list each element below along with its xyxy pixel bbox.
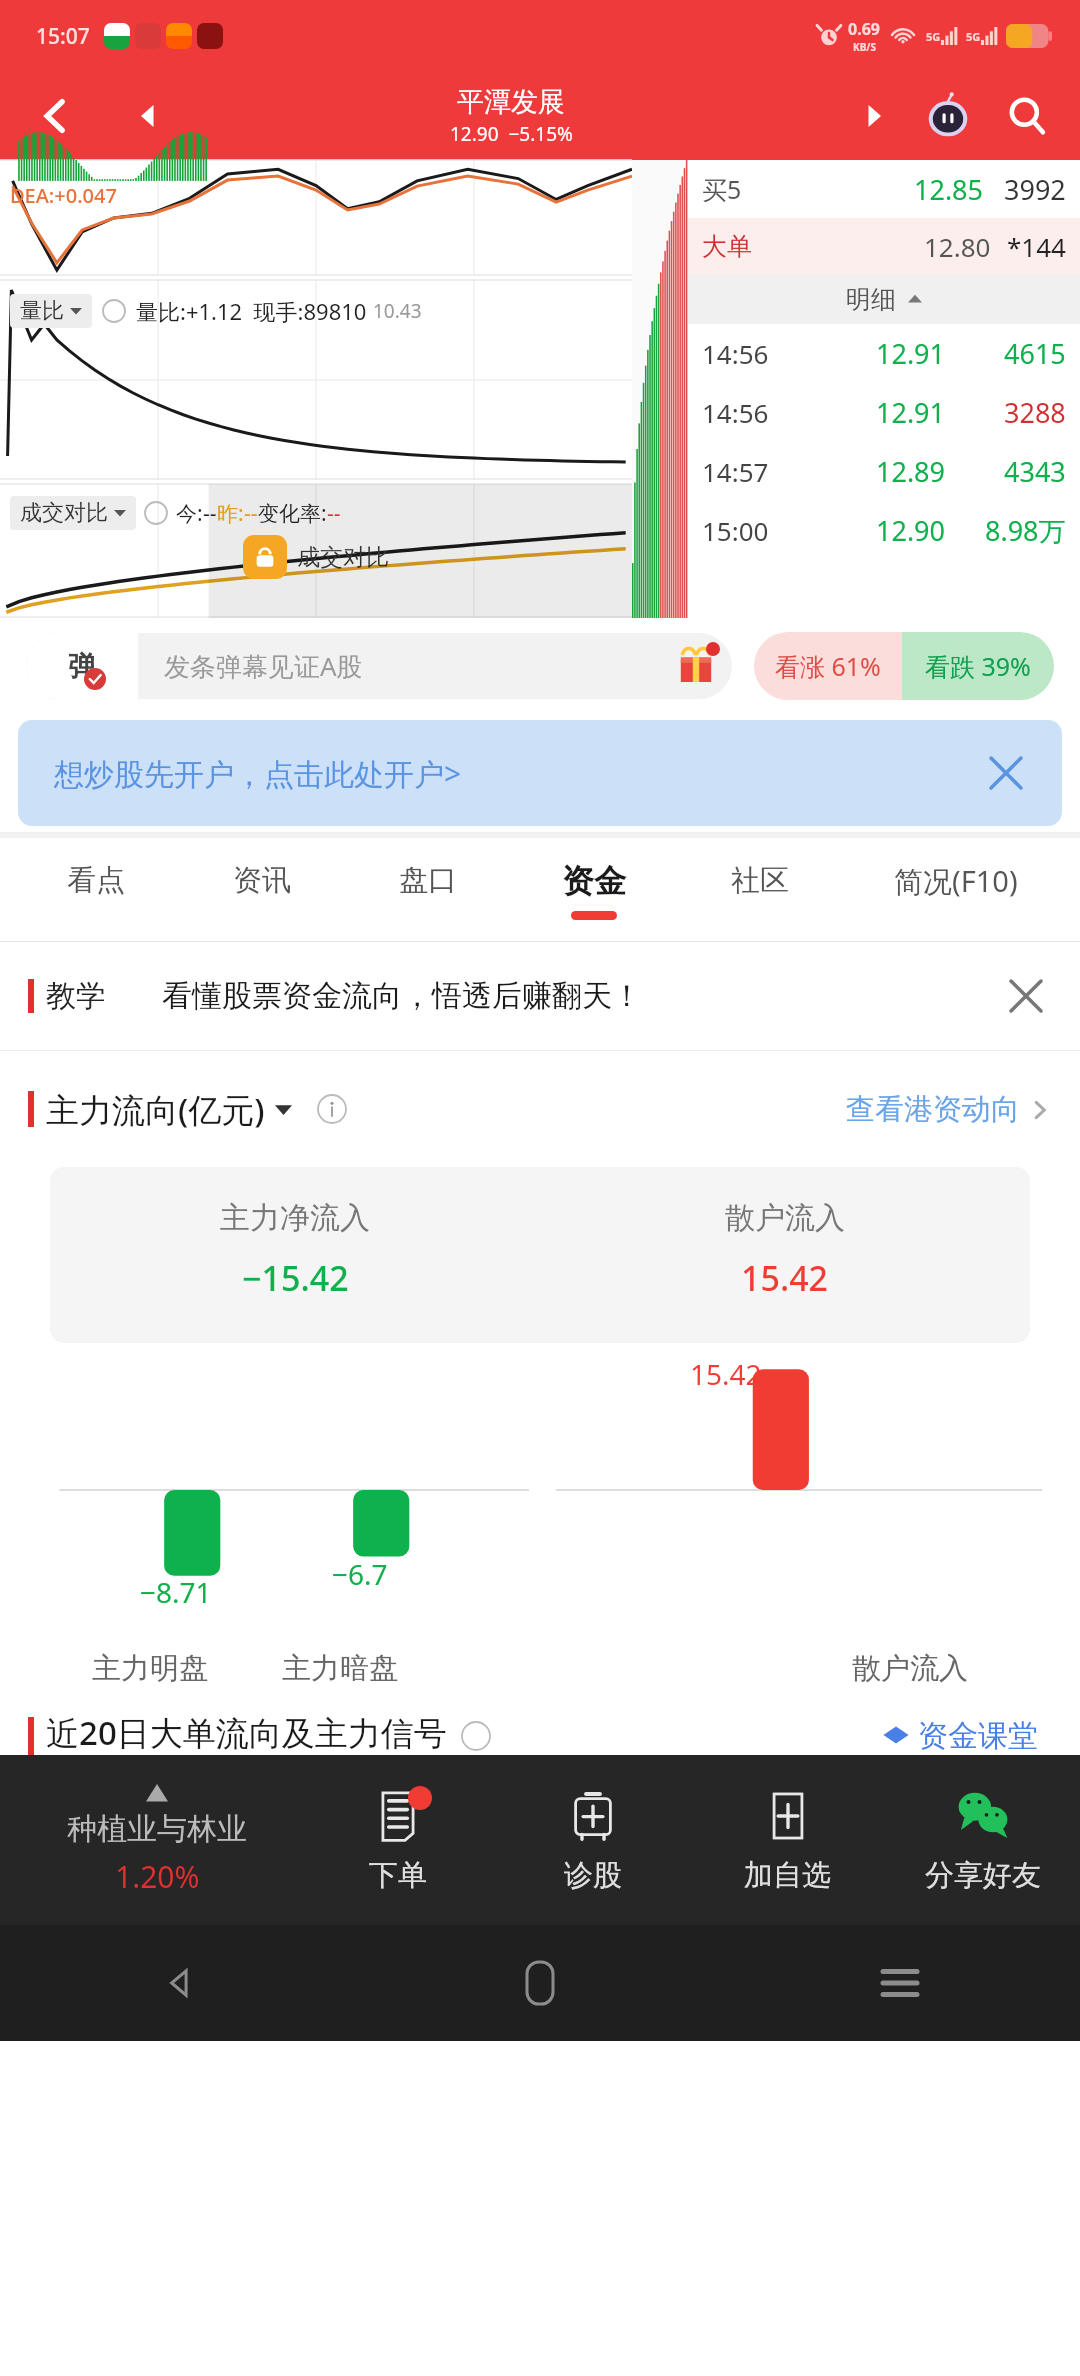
staticText: 弹 <box>68 649 96 684</box>
staticText: 想炒股先开户，点击此处开户> <box>54 753 462 794</box>
staticText: 量比 <box>20 297 64 325</box>
button[interactable]: 想炒股先开户，点击此处开户> <box>18 720 1062 826</box>
staticText: 15:00 <box>702 513 769 548</box>
button[interactable]: Previous stock <box>120 88 176 144</box>
button[interactable]: 主力流向(亿元) <box>46 1087 292 1132</box>
staticText: 12.85 <box>914 171 984 208</box>
button[interactable]: 诊股 <box>495 1755 690 1925</box>
staticText: 今: <box>176 499 203 528</box>
staticText: 明细 <box>846 284 896 315</box>
staticText: 近20日大单流向及主力信号 <box>46 1710 447 1755</box>
staticText: 5G <box>966 29 981 44</box>
staticText: 资讯 <box>233 862 291 899</box>
button[interactable]: 资金课堂 <box>868 1717 1052 1755</box>
staticText: 看懂股票资金流向，悟透后赚翻天！ <box>162 977 642 1015</box>
staticText: 散户流入 <box>725 1199 845 1237</box>
button[interactable]: Info <box>314 1091 350 1127</box>
staticText: 8.98万 <box>985 512 1066 549</box>
staticText: 资金课堂 <box>918 1717 1038 1755</box>
button[interactable]: Close banner <box>980 747 1032 799</box>
button[interactable]: 成交对比 <box>243 535 389 579</box>
staticText: DEA:+0.047 <box>10 182 117 209</box>
button[interactable]: 看涨 61% <box>754 632 902 700</box>
staticText: 昨: <box>217 499 244 528</box>
button[interactable]: 分享好友 <box>885 1755 1080 1925</box>
button[interactable]: 明细 <box>688 274 1080 324</box>
staticText: 大单 <box>702 231 752 262</box>
staticText: 散户流入 <box>852 1650 968 1687</box>
staticText: 查看港资动向 <box>846 1091 1020 1128</box>
staticText: 3288 <box>1004 394 1066 431</box>
staticText: 14:56 <box>702 336 769 371</box>
button[interactable]: 15:00 <box>688 501 1080 560</box>
button[interactable]: Back <box>0 1925 360 2041</box>
button[interactable]: 14:56 <box>688 324 1080 383</box>
staticText: 发条弹幕见证A股 <box>164 648 363 684</box>
button[interactable]: Close teaching banner <box>1000 970 1052 1022</box>
staticText: 15:07 <box>36 22 90 51</box>
button[interactable]: AI assistant <box>916 84 980 148</box>
staticText: 成交对比 <box>297 543 389 572</box>
staticText: 种植业与林业 <box>67 1810 247 1848</box>
staticText: 1.20% <box>115 1856 200 1897</box>
staticText: −6.7 <box>332 1555 388 1593</box>
button[interactable]: 下单 <box>300 1755 495 1925</box>
button[interactable]: 社区 <box>677 838 843 942</box>
button[interactable]: 买5 <box>688 160 1080 218</box>
staticText: 看跌 39% <box>925 649 1031 683</box>
button[interactable]: 量比 <box>10 294 92 328</box>
button[interactable]: Search <box>996 85 1058 147</box>
staticText: 4343 <box>1004 453 1066 490</box>
button[interactable]: 加自选 <box>690 1755 885 1925</box>
button[interactable]: 看点 <box>12 838 179 942</box>
staticText: 12.90 −5.15% <box>450 121 573 147</box>
button[interactable]: 查看港资动向 <box>846 1091 1052 1128</box>
staticText: 分享好友 <box>925 1857 1041 1894</box>
button[interactable]: 弹 <box>26 633 732 699</box>
button[interactable]: 种植业与林业 <box>0 1755 300 1925</box>
staticText: -- <box>203 499 217 528</box>
staticText: 平潭发展 <box>457 85 565 119</box>
staticText: KB/S <box>853 40 876 54</box>
button[interactable]: 简况(F10) <box>843 838 1068 942</box>
staticText: 成交对比 <box>20 499 108 527</box>
staticText: 4615 <box>1004 335 1066 372</box>
button[interactable]: Next stock <box>846 88 902 144</box>
button[interactable]: 14:56 <box>688 383 1080 442</box>
staticText: 教学 <box>46 977 106 1015</box>
staticText: 量比:+1.12 现手:89810 <box>136 296 367 326</box>
staticText: 看涨 61% <box>775 649 881 683</box>
staticText: 12.90 <box>876 512 946 549</box>
staticText: 12.91 <box>876 394 946 431</box>
staticText: 14:57 <box>702 454 769 489</box>
staticText: *144 <box>1007 229 1066 264</box>
button[interactable]: 大单 <box>688 218 1080 274</box>
staticText: 下单 <box>369 1857 427 1894</box>
staticText: 资金 <box>562 861 626 901</box>
staticText: 0.69 <box>848 18 880 40</box>
staticText: 主力净流入 <box>220 1199 370 1237</box>
staticText: 5G <box>926 29 941 44</box>
staticText: -- <box>327 499 341 528</box>
button[interactable]: 成交对比 <box>10 496 136 530</box>
staticText: 主力流向(亿元) <box>46 1087 265 1132</box>
staticText: 3992 <box>1004 171 1066 208</box>
staticText: 社区 <box>731 862 789 899</box>
staticText: -- <box>244 499 258 528</box>
staticText: 15.42 <box>741 1255 829 1301</box>
button[interactable]: Recents <box>720 1925 1080 2041</box>
staticText: 12.80 <box>924 229 991 264</box>
button[interactable]: 14:57 <box>688 442 1080 501</box>
button[interactable]: 教学 <box>0 942 1080 1050</box>
button[interactable]: Back <box>22 82 90 150</box>
button[interactable]: 主力净流入 <box>50 1167 1030 1343</box>
staticText: 10.43 <box>373 298 422 324</box>
staticText: 变化率: <box>258 499 327 528</box>
button[interactable]: Home <box>360 1925 720 2041</box>
button[interactable]: 资金 <box>511 838 677 942</box>
button[interactable]: 看跌 39% <box>902 632 1054 700</box>
staticText: 主力明盘 <box>92 1650 208 1687</box>
staticText: 12.89 <box>876 453 946 490</box>
button[interactable]: 盘口 <box>345 838 511 942</box>
button[interactable]: 资讯 <box>179 838 345 942</box>
